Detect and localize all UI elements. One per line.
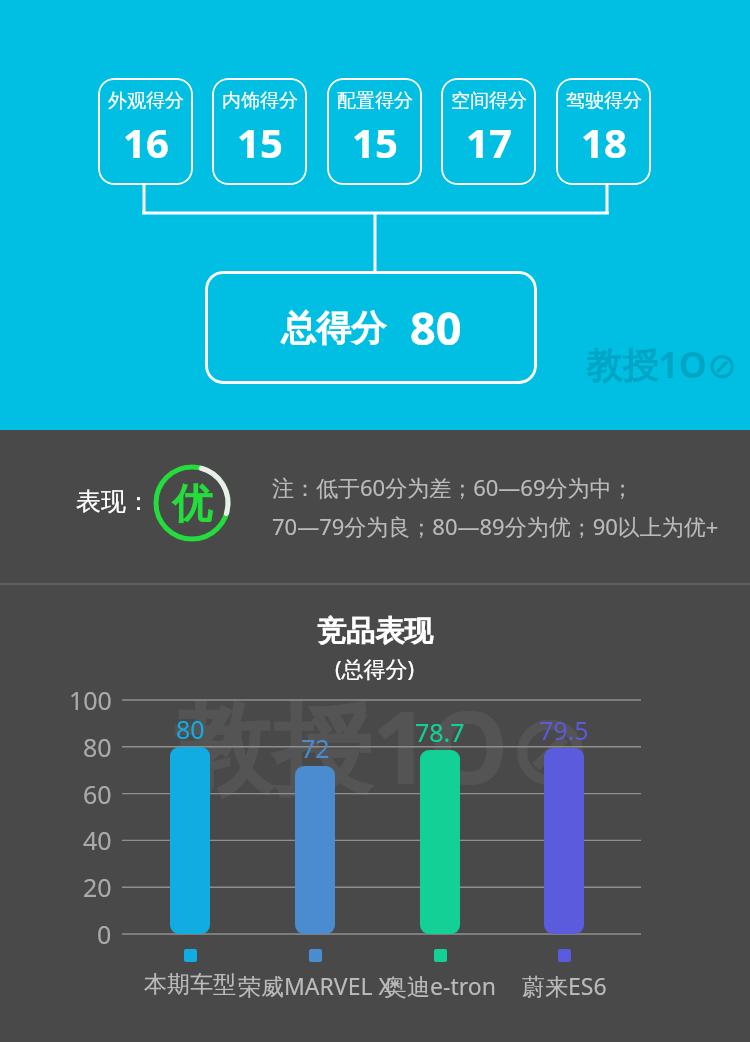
button[interactable]: 空间得分 [441, 78, 536, 185]
staticText: 100 [69, 683, 112, 717]
staticText: 优 [172, 478, 212, 528]
button[interactable]: 78.7 [420, 750, 460, 934]
staticText: 注：低于60分为差；60—69分为中； [272, 472, 634, 502]
staticText: 本期车型 [144, 970, 236, 999]
staticText: 蔚来ES6 [522, 970, 607, 1001]
staticText: 18 [581, 115, 627, 169]
staticText: 总得分 [281, 306, 386, 350]
button[interactable]: 荣威MARVEL X [205, 949, 425, 1001]
button[interactable]: 80 [170, 747, 210, 934]
button[interactable]: 72 [295, 766, 335, 934]
staticText: 72 [301, 731, 330, 765]
staticText: 空间得分 [451, 89, 527, 113]
staticText: (总得分) [335, 653, 415, 683]
staticText: 奥迪e-tron [384, 970, 496, 1001]
staticText: 20 [83, 870, 112, 904]
staticText: 16 [123, 115, 169, 169]
staticText: 驾驶得分 [566, 89, 642, 113]
staticText: 60 [83, 777, 112, 811]
staticText: 配置得分 [337, 89, 413, 113]
staticText: 80 [176, 712, 205, 746]
staticText: 内饰得分 [222, 89, 298, 113]
staticText: 表现： [76, 486, 151, 517]
staticText: 0 [97, 917, 112, 951]
staticText: 竞品表现 [317, 613, 433, 650]
button[interactable]: 驾驶得分 [556, 78, 651, 185]
staticText: 80 [410, 297, 462, 358]
staticText: 15 [352, 115, 398, 169]
button[interactable]: 总得分 [205, 271, 537, 384]
staticText: 外观得分 [108, 89, 184, 113]
button[interactable]: 本期车型 [80, 949, 300, 999]
staticText: 17 [466, 115, 512, 169]
staticText: 78.7 [415, 715, 465, 749]
staticText: 教授1O⊘ [172, 677, 593, 814]
staticText: 荣威MARVEL X [238, 970, 392, 1001]
staticText: 79.5 [539, 713, 589, 747]
staticText: 80 [83, 730, 112, 764]
button[interactable]: 配置得分 [327, 78, 422, 185]
staticText: 70—79分为良；80—89分为优；90以上为优+ [272, 511, 719, 541]
button[interactable]: 蔚来ES6 [454, 949, 674, 1001]
button[interactable]: 外观得分 [98, 78, 193, 185]
button[interactable]: 奥迪e-tron [330, 949, 550, 1001]
button[interactable]: 内饰得分 [212, 78, 307, 185]
staticText: 教授1O⊘ [586, 340, 738, 389]
button[interactable]: 79.5 [544, 748, 584, 934]
button[interactable]: 表现优 [153, 464, 231, 542]
staticText: 15 [237, 115, 283, 169]
staticText: 40 [83, 823, 112, 857]
